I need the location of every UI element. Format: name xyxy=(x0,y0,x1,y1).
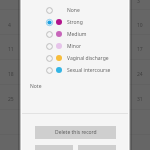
button[interactable]: None xyxy=(22,4,128,16)
button[interactable]: Sexual intercourse xyxy=(22,64,128,76)
staticText: Strong xyxy=(67,19,83,26)
staticText: None xyxy=(67,7,80,14)
button[interactable]: Delete this record xyxy=(35,126,116,139)
staticText: 24 xyxy=(137,71,143,78)
staticText: Vaginal discharge xyxy=(67,55,109,62)
button[interactable]: Medium xyxy=(22,28,128,40)
staticText: Medium xyxy=(67,31,87,38)
staticText: 3 xyxy=(137,0,140,5)
staticText: Sexual intercourse xyxy=(67,67,111,74)
staticText: 10 xyxy=(137,22,143,29)
staticText: 17 xyxy=(137,46,143,53)
button[interactable]: Minor xyxy=(22,40,128,52)
button[interactable]: Strong xyxy=(22,16,128,28)
staticText: Delete this record xyxy=(55,129,97,136)
staticText: 4 xyxy=(8,22,11,29)
staticText: Minor xyxy=(67,43,82,50)
staticText: 11 xyxy=(8,46,14,53)
staticText: 31 xyxy=(137,96,143,103)
button[interactable]: Vaginal discharge xyxy=(22,52,128,64)
staticText: Note xyxy=(30,83,42,90)
staticText: 25 xyxy=(8,96,14,103)
staticText: 18 xyxy=(8,71,14,78)
